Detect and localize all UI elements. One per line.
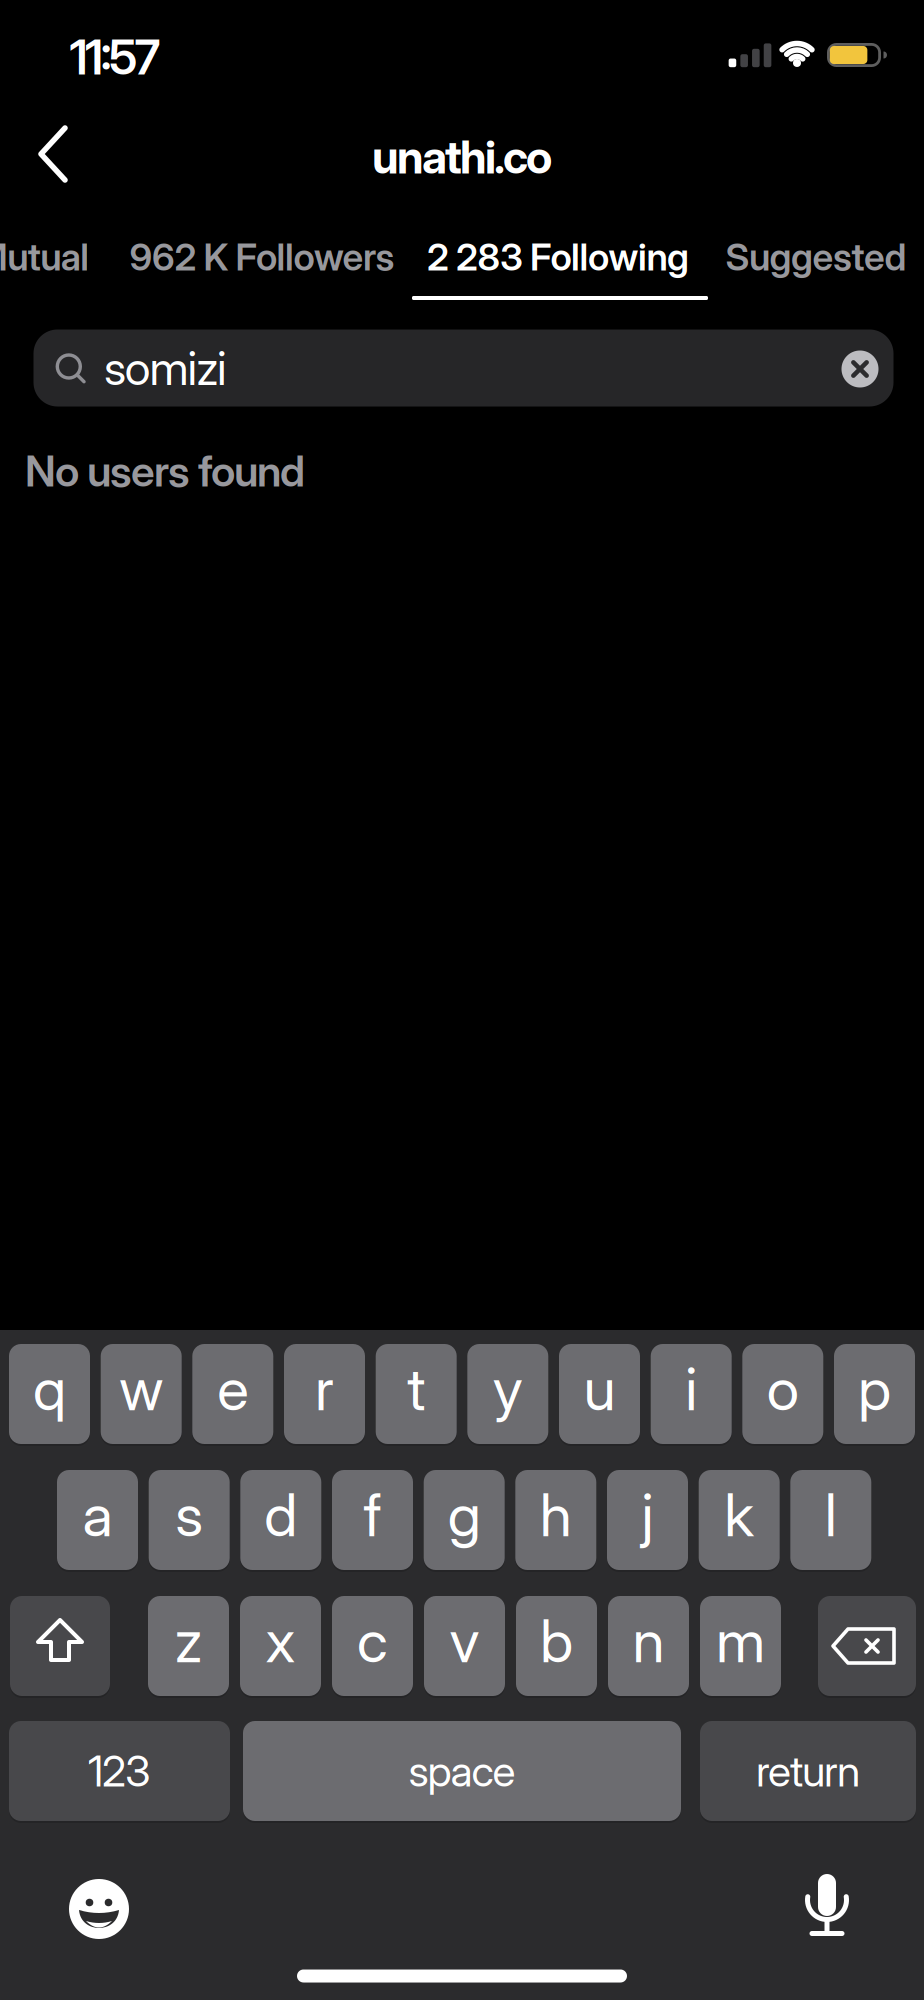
button[interactable]: e <box>192 1343 273 1445</box>
button[interactable]: c <box>332 1595 413 1697</box>
button[interactable]: return <box>700 1720 916 1822</box>
staticText: d <box>264 1480 297 1550</box>
button[interactable]: Suggested <box>725 235 906 279</box>
staticText: i <box>685 1354 697 1424</box>
staticText: 962 K Followers <box>129 235 394 279</box>
staticText: 123 <box>88 1746 151 1796</box>
button[interactable]: q <box>9 1343 90 1445</box>
staticText: g <box>448 1480 481 1550</box>
staticText: Suggested <box>725 235 906 279</box>
button[interactable]: 2 283 Following <box>427 235 689 279</box>
staticText: t <box>407 1354 425 1424</box>
staticText: z <box>174 1606 202 1676</box>
button[interactable]: k <box>699 1469 780 1571</box>
button[interactable]: j <box>607 1469 688 1571</box>
staticText: l <box>825 1480 837 1550</box>
staticText: v <box>449 1606 479 1676</box>
button[interactable]: h <box>515 1469 596 1571</box>
button[interactable]: y <box>467 1343 548 1445</box>
button[interactable]: x <box>240 1595 321 1697</box>
staticText: x <box>265 1606 295 1676</box>
staticText: n <box>632 1606 664 1676</box>
staticText: p <box>858 1354 891 1424</box>
button[interactable]: Shift <box>10 1595 110 1697</box>
staticText: j <box>641 1480 653 1550</box>
staticText: m <box>716 1606 765 1676</box>
staticText: r <box>315 1354 334 1424</box>
button[interactable]: r <box>284 1343 365 1445</box>
staticText: q <box>33 1354 66 1424</box>
staticText: return <box>756 1746 860 1796</box>
staticText: c <box>357 1606 388 1676</box>
button[interactable]: space <box>243 1720 681 1822</box>
button[interactable]: t <box>376 1343 457 1445</box>
button[interactable]: Emoji <box>64 1874 134 1944</box>
staticText: 11:57 <box>69 29 160 85</box>
staticText: h <box>540 1480 572 1550</box>
staticText: unathi.co <box>372 130 552 184</box>
staticText: a <box>82 1480 112 1550</box>
button[interactable]: Clear search text <box>840 349 880 389</box>
button[interactable]: somizi <box>33 329 893 406</box>
button[interactable]: a <box>57 1469 138 1571</box>
staticText: b <box>540 1606 573 1676</box>
staticText: somizi <box>104 340 227 396</box>
button[interactable]: i <box>651 1343 732 1445</box>
staticText: 2 283 Following <box>427 235 689 279</box>
button[interactable]: Delete <box>818 1595 916 1697</box>
button[interactable]: f <box>332 1469 413 1571</box>
button[interactable]: Mutual <box>0 235 89 279</box>
staticText: k <box>724 1480 754 1550</box>
button[interactable]: u <box>559 1343 640 1445</box>
staticText: y <box>493 1354 523 1424</box>
button[interactable]: w <box>101 1343 182 1445</box>
button[interactable]: s <box>149 1469 230 1571</box>
staticText: w <box>119 1354 163 1424</box>
button[interactable]: b <box>516 1595 597 1697</box>
button[interactable]: v <box>424 1595 505 1697</box>
button[interactable]: Dictate <box>792 1859 862 1949</box>
button[interactable]: p <box>834 1343 915 1445</box>
staticText: Mutual <box>0 235 89 279</box>
button[interactable]: 123 <box>9 1720 230 1822</box>
button[interactable]: g <box>424 1469 505 1571</box>
button[interactable]: 962 K Followers <box>129 235 394 279</box>
staticText: s <box>175 1480 203 1550</box>
staticText: No users found <box>25 446 305 496</box>
button[interactable]: m <box>700 1595 781 1697</box>
button[interactable]: o <box>742 1343 823 1445</box>
button[interactable]: Back <box>26 114 86 194</box>
staticText: space <box>408 1746 515 1796</box>
staticText: o <box>767 1354 799 1424</box>
button[interactable]: z <box>148 1595 229 1697</box>
button[interactable]: n <box>608 1595 689 1697</box>
staticText: u <box>583 1354 615 1424</box>
button[interactable]: l <box>790 1469 871 1571</box>
staticText: e <box>217 1354 248 1424</box>
staticText: f <box>363 1480 381 1550</box>
button[interactable]: d <box>240 1469 321 1571</box>
